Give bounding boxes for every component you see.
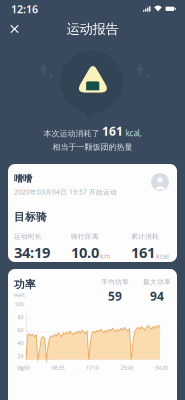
staticText: 2020年03月04日 19:57 开始运动 bbox=[14, 187, 117, 196]
staticText: 相当于一颗饭团的热量 bbox=[52, 142, 132, 152]
staticText: 34:19 bbox=[14, 243, 50, 262]
staticText: 12:16 bbox=[11, 2, 38, 16]
staticText: 运动报告 bbox=[66, 21, 118, 37]
staticText: 10.0 bbox=[71, 243, 99, 262]
staticText: 34:20 bbox=[155, 364, 168, 371]
staticText: 161 bbox=[102, 123, 123, 139]
staticText: 60 bbox=[17, 327, 23, 334]
staticText: 80 bbox=[17, 314, 23, 321]
staticText: 骑行距离 bbox=[71, 232, 99, 241]
staticText: 嗜嗜 bbox=[14, 173, 32, 184]
staticText: kcal bbox=[156, 252, 169, 261]
staticText: 17:10 bbox=[86, 364, 99, 371]
staticText: 最大功率 bbox=[143, 278, 171, 286]
staticText: 40 bbox=[17, 340, 23, 347]
staticText: 20 bbox=[17, 353, 23, 360]
staticText: 08:35 bbox=[51, 364, 64, 371]
staticText: 平均功率 bbox=[101, 278, 129, 286]
staticText: 00:00 bbox=[17, 364, 30, 371]
staticText: kcal, bbox=[125, 128, 141, 138]
staticText: 59 bbox=[108, 288, 122, 304]
staticText: 累计消耗 bbox=[131, 232, 159, 241]
staticText: 功率 bbox=[14, 278, 36, 291]
staticText: 100 bbox=[14, 301, 23, 308]
staticText: 0 bbox=[20, 366, 23, 373]
staticText: km bbox=[100, 252, 110, 261]
staticText: 25:45 bbox=[120, 364, 133, 371]
staticText: 目标骑 bbox=[14, 210, 47, 223]
staticText: 运动时长 bbox=[14, 232, 42, 241]
button[interactable]: 关闭 bbox=[5, 19, 24, 38]
staticText: 161 bbox=[131, 243, 155, 262]
staticText: 94 bbox=[150, 288, 164, 304]
staticText: 本次运动消耗了 bbox=[43, 129, 99, 138]
staticText: watt bbox=[14, 291, 25, 298]
